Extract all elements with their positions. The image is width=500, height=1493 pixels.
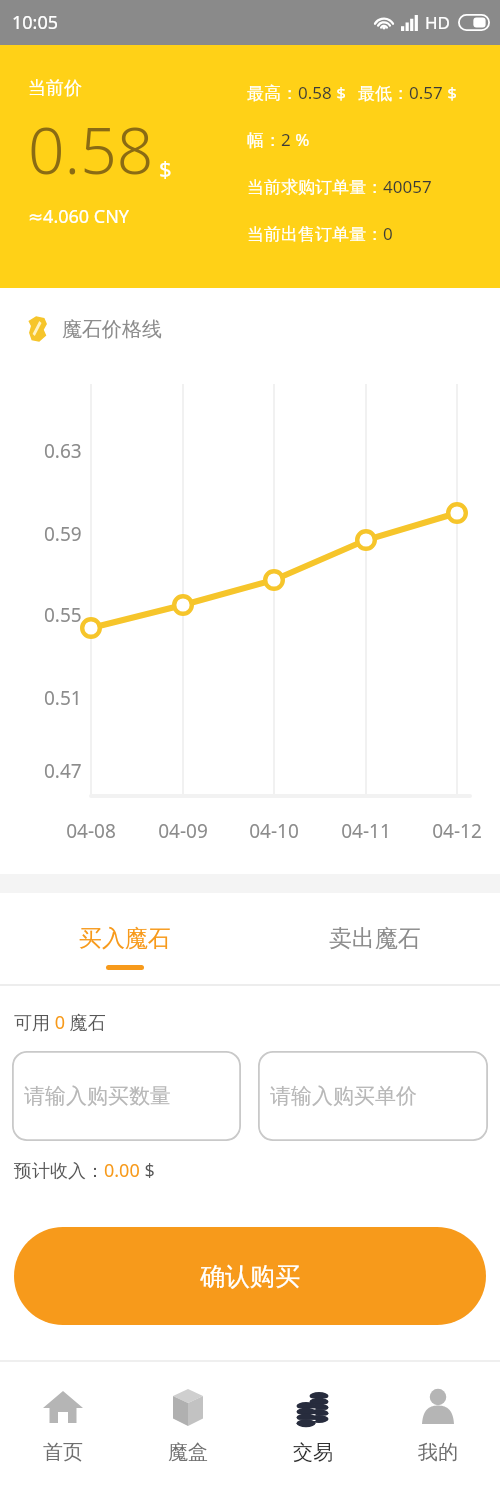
staticText: 卖出魔石 — [329, 924, 421, 953]
button[interactable]: 买入魔石 — [0, 893, 250, 984]
staticText: 确认购买 — [200, 1261, 300, 1292]
staticText: 交易 — [293, 1440, 333, 1465]
staticText: 0.59 — [44, 521, 82, 547]
staticText: 魔盒 — [168, 1440, 208, 1465]
staticText: 幅：2 % — [247, 128, 310, 151]
staticText: 0.47 — [44, 758, 82, 784]
staticText: 首页 — [43, 1440, 83, 1465]
staticText: 04-12 — [421, 818, 493, 844]
button[interactable]: 卖出魔石 — [250, 893, 500, 984]
staticText: 最高：0.58 $ — [247, 81, 346, 104]
staticText: 0.58 — [28, 106, 154, 193]
staticText: 可用 0 魔石 — [14, 1010, 106, 1035]
staticText: 买入魔石 — [79, 924, 171, 953]
staticText: 04-11 — [330, 818, 402, 844]
button[interactable]: 魔盒 — [125, 1362, 250, 1493]
button[interactable]: 确认购买 — [14, 1227, 486, 1325]
staticText: 当前求购订单量：40057 — [247, 175, 432, 198]
staticText: 0.55 — [44, 602, 82, 628]
button[interactable]: 请输入购买数量 — [12, 1051, 241, 1141]
button[interactable]: 我的 — [375, 1362, 500, 1493]
staticText: 04-08 — [55, 818, 127, 844]
button[interactable]: 请输入购买单价 — [258, 1051, 488, 1141]
staticText: 04-10 — [238, 818, 310, 844]
staticText: 04-09 — [147, 818, 219, 844]
staticText: HD — [425, 11, 451, 34]
button[interactable]: 首页 — [0, 1362, 125, 1493]
staticText: 魔石价格线 — [62, 317, 162, 342]
staticText: 请输入购买单价 — [270, 1083, 417, 1109]
staticText: 最低：0.57 $ — [358, 81, 457, 104]
button[interactable]: 交易 — [250, 1362, 375, 1493]
staticText: 0.51 — [44, 685, 82, 711]
staticText: 请输入购买数量 — [24, 1083, 171, 1109]
staticText: 10:05 — [12, 10, 59, 35]
staticText: ≈4.060 CNY — [28, 204, 130, 229]
staticText: 当前价 — [28, 77, 82, 100]
staticText: $ — [159, 153, 172, 183]
staticText: 0.63 — [44, 438, 82, 464]
staticText: 当前出售订单量：0 — [247, 222, 393, 245]
staticText: 预计收入：0.00 $ — [14, 1158, 155, 1183]
staticText: 我的 — [418, 1440, 458, 1465]
other: 魔石 — [22, 313, 54, 345]
